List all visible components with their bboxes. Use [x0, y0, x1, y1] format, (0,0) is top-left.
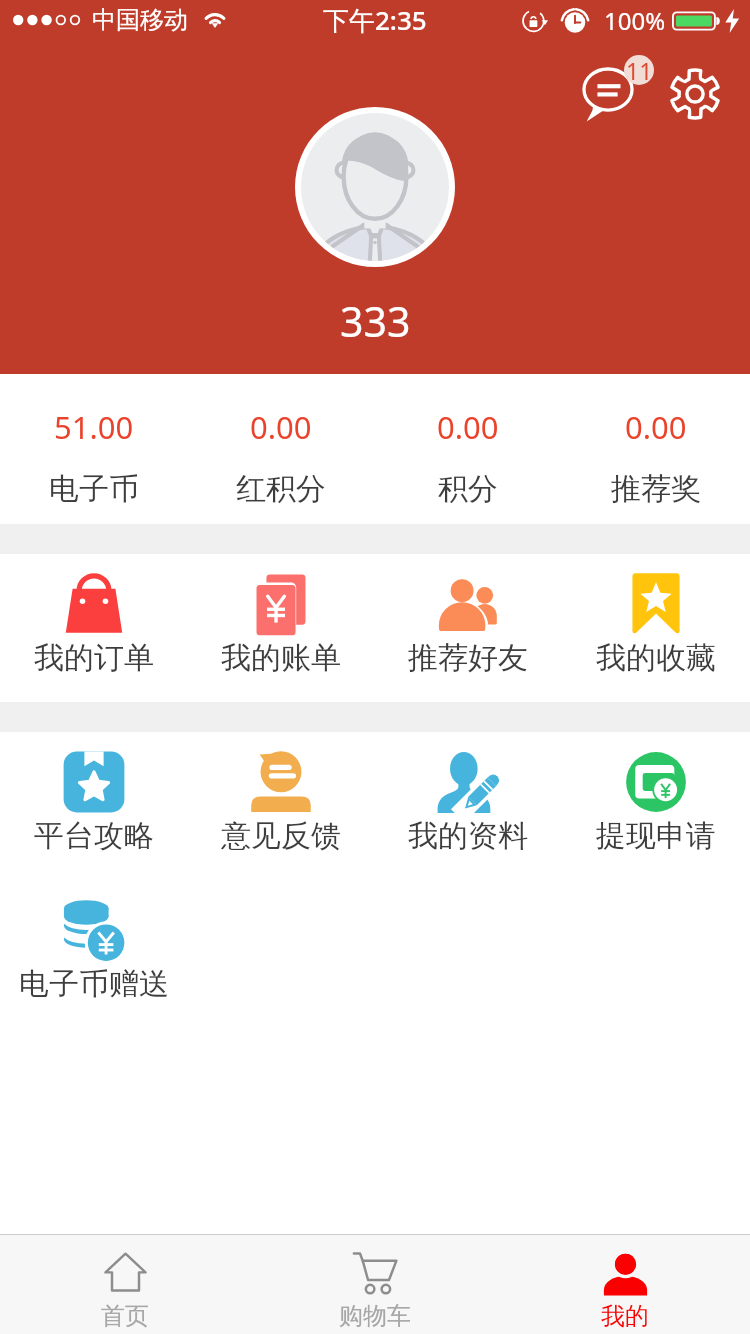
- staticText: 意见反馈: [221, 817, 341, 855]
- staticText: 333: [340, 293, 411, 349]
- button[interactable]: 我的订单: [0, 554, 187, 702]
- button[interactable]: 我的: [500, 1235, 750, 1334]
- button[interactable]: 0.00: [187, 374, 374, 524]
- staticText: 我的订单: [34, 639, 154, 677]
- button[interactable]: 提现申请: [562, 732, 750, 880]
- staticText: 电子币: [49, 470, 139, 508]
- staticText: 0.00: [437, 406, 499, 448]
- staticText: 0.00: [250, 406, 312, 448]
- button[interactable]: [295, 107, 455, 267]
- staticText: 提现申请: [596, 817, 716, 855]
- staticText: 推荐好友: [408, 639, 528, 677]
- button[interactable]: Messages: [575, 52, 647, 124]
- staticText: 下午2:35: [323, 2, 427, 38]
- staticText: 购物车: [339, 1301, 411, 1331]
- staticText: 电子币赠送: [19, 965, 169, 1003]
- staticText: 11: [626, 55, 653, 85]
- staticText: 我的账单: [221, 639, 341, 677]
- button[interactable]: 电子币赠送: [0, 880, 187, 1028]
- staticText: 100%: [604, 4, 666, 37]
- button[interactable]: 51.00: [0, 374, 187, 524]
- button[interactable]: 首页: [0, 1235, 250, 1334]
- button[interactable]: 购物车: [250, 1235, 500, 1334]
- staticText: 51.00: [54, 406, 134, 448]
- button[interactable]: 推荐好友: [374, 554, 562, 702]
- button[interactable]: 意见反馈: [187, 732, 374, 880]
- staticText: 0.00: [625, 406, 687, 448]
- staticText: 积分: [438, 470, 498, 508]
- staticText: 推荐奖: [611, 470, 701, 508]
- button[interactable]: 我的收藏: [562, 554, 750, 702]
- staticText: 我的: [601, 1301, 649, 1331]
- button[interactable]: Settings: [665, 64, 725, 124]
- staticText: 平台攻略: [34, 817, 154, 855]
- staticText: 红积分: [236, 470, 326, 508]
- staticText: 首页: [101, 1301, 149, 1331]
- staticText: 我的资料: [408, 817, 528, 855]
- button[interactable]: 我的资料: [374, 732, 562, 880]
- button[interactable]: 我的账单: [187, 554, 374, 702]
- button[interactable]: 0.00: [374, 374, 562, 524]
- staticText: 我的收藏: [596, 639, 716, 677]
- button[interactable]: 0.00: [562, 374, 750, 524]
- staticText: 中国移动: [92, 5, 188, 35]
- button[interactable]: 平台攻略: [0, 732, 187, 880]
